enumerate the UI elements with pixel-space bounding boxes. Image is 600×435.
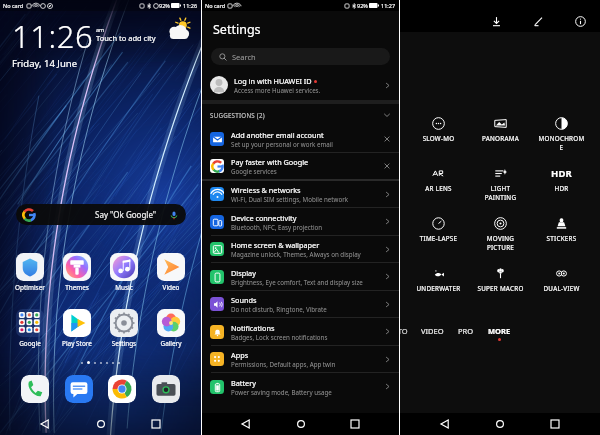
button[interactable]: MORE: [481, 325, 518, 342]
button[interactable]: Video: [149, 253, 193, 292]
staticText: Access more Huawei services.: [234, 86, 321, 94]
staticText: DUAL-VIEW: [538, 284, 585, 293]
staticText: PRO: [458, 326, 474, 336]
staticText: Log in with HUAWEI ID: [234, 76, 312, 86]
button[interactable]: Back: [435, 414, 455, 434]
staticText: SUGGESTIONS (2): [210, 111, 265, 119]
button[interactable]: Search: [211, 48, 390, 65]
staticText: Touch to add city: [96, 33, 156, 43]
button[interactable]: Info: [570, 11, 590, 31]
button[interactable]: Themes: [55, 253, 99, 292]
button[interactable]: AR LENS: [415, 167, 462, 217]
button[interactable]: Wireless & networks: [202, 181, 399, 207]
button[interactable]: Phone: [21, 375, 49, 403]
button[interactable]: SLOW-MO: [415, 117, 462, 167]
button[interactable]: STICKERS: [538, 217, 585, 267]
button[interactable]: Music: [102, 253, 146, 292]
staticText: Home screen & wallpaper: [231, 240, 320, 250]
staticText: Battery: [231, 378, 256, 388]
button[interactable]: Chrome: [108, 375, 136, 403]
staticText: Brightness, Eye comfort, Text and displa…: [231, 278, 363, 286]
staticText: Search: [232, 52, 256, 62]
staticText: HDR: [538, 184, 585, 193]
button[interactable]: Battery: [202, 373, 399, 400]
button[interactable]: Say "Ok Google": [16, 204, 186, 225]
button[interactable]: Optimiser: [8, 253, 52, 292]
staticText: Bluetooth, NFC, Easy projection: [231, 223, 323, 231]
button[interactable]: MOVING PICTURE: [477, 217, 524, 267]
button[interactable]: MONOCHROME: [538, 117, 585, 167]
staticText: MONOCHROME: [538, 134, 585, 152]
staticText: Pay faster with Google: [231, 157, 309, 167]
staticText: Music: [102, 283, 146, 292]
staticText: Friday, 14 June: [12, 57, 77, 70]
button[interactable]: Camera: [152, 375, 180, 403]
staticText: Do not disturb, Ringtone, Vibrate: [231, 305, 327, 313]
staticText: Themes: [55, 283, 99, 292]
button[interactable]: Device connectivity: [202, 208, 399, 235]
staticText: Settings: [102, 339, 146, 348]
button[interactable]: Home: [91, 414, 111, 434]
button[interactable]: LIGHT PAINTING: [477, 167, 524, 217]
staticText: Permissions, Default apps, App twin: [231, 360, 336, 368]
button[interactable]: Settings: [102, 309, 146, 348]
button[interactable]: Back: [35, 414, 55, 434]
staticText: 11:26: [183, 2, 198, 9]
staticText: am: [96, 26, 105, 33]
staticText: AR LENS: [415, 184, 462, 193]
button[interactable]: Recents: [545, 414, 565, 434]
button[interactable]: Download: [486, 11, 506, 31]
staticText: Display: [231, 268, 256, 278]
button[interactable]: Edit: [528, 11, 548, 31]
staticText: Settings: [213, 21, 261, 38]
button[interactable]: PRO: [451, 325, 481, 337]
button[interactable]: TIME-LAPSE: [415, 217, 462, 267]
button[interactable]: Log in with HUAWEI ID: [202, 70, 399, 100]
staticText: Google services: [231, 167, 277, 175]
button[interactable]: Recents: [146, 414, 166, 434]
button[interactable]: Messages: [65, 375, 93, 403]
staticText: MORE: [488, 326, 511, 336]
staticText: SUPER MACRO: [477, 284, 524, 293]
button[interactable]: Pay faster with Google: [202, 153, 399, 179]
staticText: TIME-LAPSE: [415, 234, 462, 243]
staticText: VIDEO: [421, 326, 444, 336]
button[interactable]: Display: [202, 263, 399, 290]
button[interactable]: SUPER MACRO: [477, 267, 524, 317]
button[interactable]: Back: [236, 414, 256, 434]
button[interactable]: DUAL-VIEW: [538, 267, 585, 317]
staticText: Apps: [231, 350, 249, 360]
staticText: Google: [8, 339, 52, 348]
button[interactable]: PANORAMA: [477, 117, 524, 167]
button[interactable]: Gallery: [149, 309, 193, 348]
button[interactable]: Play Store: [55, 309, 99, 348]
button[interactable]: Apps: [202, 346, 399, 372]
staticText: HDR: [551, 167, 573, 180]
button[interactable]: UNDERWATER: [415, 267, 462, 317]
button[interactable]: Home screen & wallpaper: [202, 236, 399, 262]
staticText: Set up your personal or work email: [231, 140, 333, 148]
staticText: 11:26: [12, 15, 94, 57]
staticText: Say "Ok Google": [95, 209, 157, 220]
button[interactable]: Recents: [345, 414, 365, 434]
button[interactable]: Notifications: [202, 318, 399, 345]
staticText: Wi-Fi, Dual SIM settings, Mobile network: [231, 195, 348, 203]
staticText: 92%: [357, 2, 368, 9]
staticText: No card: [205, 2, 226, 9]
staticText: Device connectivity: [231, 213, 297, 223]
button[interactable]: VIDEO: [414, 325, 451, 337]
staticText: PANORAMA: [477, 134, 524, 143]
button[interactable]: PHOTO: [400, 325, 414, 337]
button[interactable]: Home: [490, 414, 510, 434]
staticText: Sounds: [231, 295, 257, 305]
staticText: MOVING PICTURE: [477, 234, 524, 252]
staticText: Wireless & networks: [231, 185, 301, 195]
button[interactable]: HDR: [538, 167, 585, 217]
button[interactable]: Home: [291, 414, 311, 434]
staticText: No card: [3, 2, 24, 9]
button[interactable]: Sounds: [202, 291, 399, 317]
staticText: STICKERS: [538, 234, 585, 243]
button[interactable]: Google: [8, 309, 52, 348]
staticText: Magazine unlock, Themes, Always on displ…: [231, 250, 361, 258]
button[interactable]: Add another email account: [202, 126, 399, 152]
